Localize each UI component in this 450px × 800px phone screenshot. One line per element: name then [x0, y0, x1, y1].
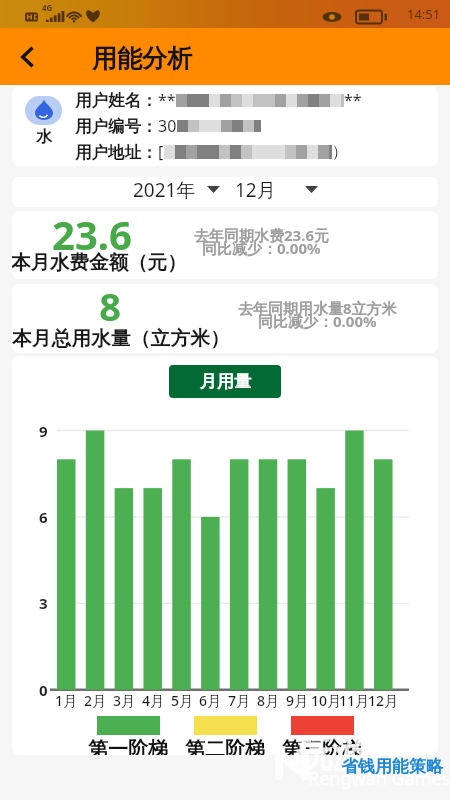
staticText: 9 [39, 421, 48, 441]
staticText: 4月 [142, 691, 165, 710]
staticText: 6 [39, 507, 48, 527]
staticText: 6月 [199, 691, 222, 710]
staticText: 3月 [113, 691, 136, 710]
staticText: 23.6 [12, 211, 178, 261]
staticText: 30 [158, 115, 177, 137]
staticText: 月用量 [200, 371, 251, 392]
staticText: 本月总用水量（立方米） [12, 326, 230, 351]
staticText: 省钱用能策略 [341, 756, 443, 777]
staticText: 去年同期水费23.6元 [194, 225, 329, 245]
button[interactable]: Back [4, 34, 50, 80]
staticText: 同比减少：0.00% [258, 311, 377, 331]
staticText: 第一阶梯 [88, 737, 168, 755]
button[interactable]: 2021年 [131, 177, 222, 203]
staticText: 14:51 [407, 5, 441, 23]
staticText: 本月水费金额（元） [12, 250, 187, 275]
staticText: ** [158, 89, 176, 111]
staticText: 水 [36, 127, 52, 147]
staticText: 9月 [286, 691, 309, 710]
staticText: 同比减少：0.00% [202, 238, 321, 258]
button[interactable]: 12月 [233, 177, 320, 203]
staticText: 去年同期用水量8立方米 [238, 298, 397, 318]
button[interactable]: 月用量 [169, 365, 281, 398]
staticText: [ [158, 141, 164, 163]
staticText: 12月 [368, 691, 399, 710]
staticText: 12月 [235, 177, 276, 199]
staticText: ** [344, 89, 362, 111]
staticText: 第三阶梯 [282, 737, 362, 755]
staticText: 用户编号： [75, 116, 158, 137]
staticText: 用户姓名： [75, 90, 158, 111]
staticText: ） [332, 142, 348, 162]
staticText: 3 [39, 593, 48, 613]
staticText: 7月 [228, 691, 251, 710]
staticText: Rengwan Games [308, 766, 450, 791]
staticText: 8月 [257, 691, 280, 710]
button[interactable]: 第一阶梯 [88, 716, 168, 755]
staticText: 8 [24, 284, 196, 332]
staticText: 0 [39, 680, 48, 700]
staticText: 第二阶梯 [185, 737, 265, 755]
staticText: 5月 [171, 691, 194, 710]
staticText: 用能分析 [92, 43, 192, 74]
staticText: 11月 [339, 691, 370, 710]
button[interactable]: 第三阶梯 [282, 716, 362, 755]
staticText: 10月 [311, 691, 342, 710]
staticText: 2021年 [133, 177, 196, 199]
staticText: 玩游戏 [296, 732, 404, 777]
staticText: 2月 [84, 691, 107, 710]
button[interactable]: 第二阶梯 [185, 716, 265, 755]
staticText: 用户地址： [75, 142, 158, 163]
staticText: 4G [42, 2, 53, 13]
staticText: 1月 [55, 691, 78, 710]
